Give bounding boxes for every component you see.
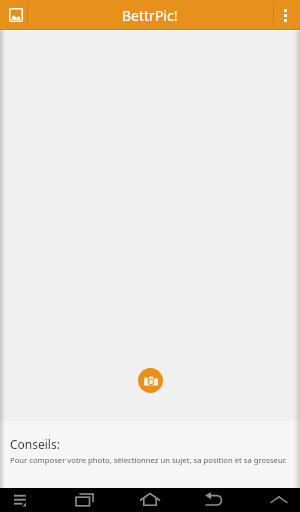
button[interactable]: Home [126,488,174,512]
button[interactable]: Take photo [138,368,163,393]
button[interactable]: Hide navigation bar [255,488,300,512]
staticText: BettrPic! [122,6,178,25]
button[interactable]: Menu [0,488,44,512]
button[interactable]: Back [190,488,238,512]
button[interactable]: More options [272,1,298,30]
staticText: Pour composer votre photo, sélectionnez … [10,455,287,465]
button[interactable]: Recent apps [61,488,109,512]
button[interactable]: Gallery [2,0,29,29]
staticText: Conseils: [10,436,60,452]
